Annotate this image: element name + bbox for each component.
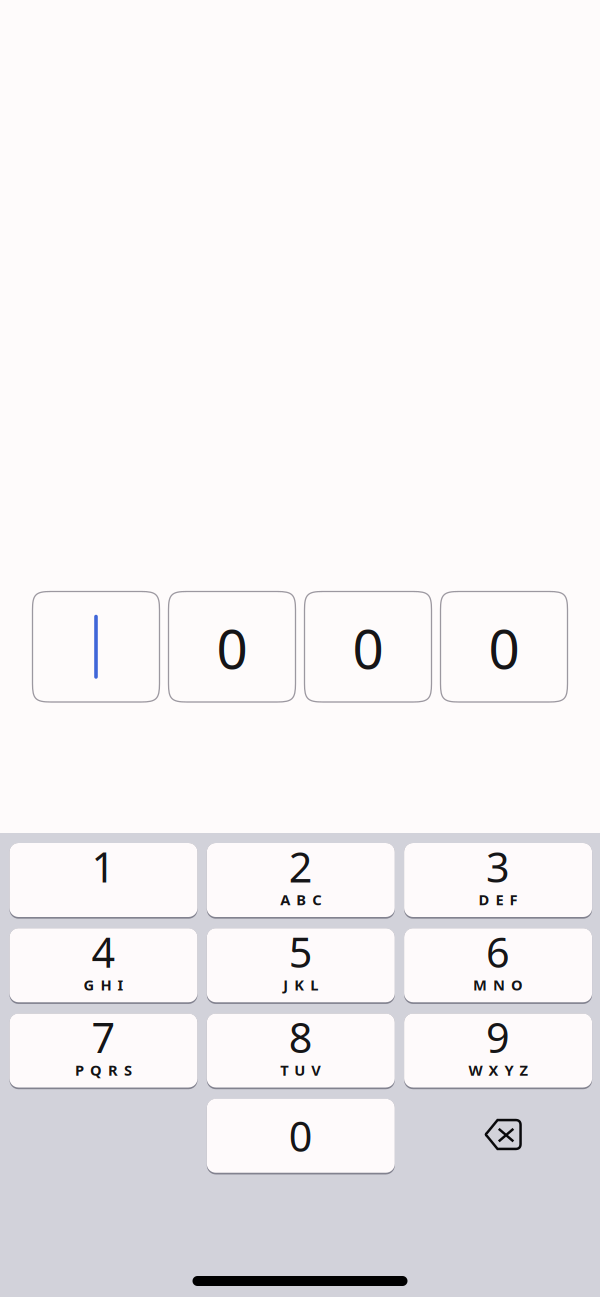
staticText: 8 bbox=[289, 1010, 313, 1064]
staticText: 7 bbox=[91, 1010, 115, 1064]
button[interactable]: 5 bbox=[207, 928, 395, 1002]
staticText: 0 bbox=[216, 611, 247, 684]
button[interactable]: 7 bbox=[9, 1013, 197, 1087]
button[interactable]: Delete bbox=[404, 1099, 592, 1173]
button[interactable]: Code digit, 0 bbox=[304, 591, 431, 702]
staticText: 9 bbox=[486, 1010, 510, 1064]
button[interactable]: 2 bbox=[207, 843, 395, 917]
staticText: J K L bbox=[283, 975, 318, 994]
staticText: 1 bbox=[91, 839, 115, 894]
button[interactable]: Code digit, 0 bbox=[168, 591, 295, 702]
button[interactable]: 6 bbox=[404, 928, 592, 1002]
staticText: 6 bbox=[486, 924, 510, 979]
staticText: D E F bbox=[479, 890, 518, 909]
button[interactable]: 3 bbox=[404, 843, 592, 917]
staticText: P Q R S bbox=[75, 1060, 132, 1080]
button[interactable]: Code digit 1, empty bbox=[32, 591, 159, 702]
staticText: 3 bbox=[486, 839, 510, 894]
button[interactable]: 8 bbox=[207, 1013, 395, 1087]
staticText: W X Y Z bbox=[469, 1060, 528, 1080]
button[interactable]: Code digit, 0 bbox=[440, 591, 567, 702]
staticText: 5 bbox=[289, 924, 313, 979]
staticText: A B C bbox=[280, 890, 321, 909]
staticText: M N O bbox=[473, 975, 523, 994]
staticText: 0 bbox=[488, 611, 519, 684]
button[interactable]: 1 bbox=[9, 843, 197, 917]
button[interactable]: 0 bbox=[207, 1099, 395, 1173]
button[interactable]: 4 bbox=[9, 928, 197, 1002]
staticText: 0 bbox=[352, 611, 383, 684]
button[interactable]: 9 bbox=[404, 1013, 592, 1087]
staticText: T U V bbox=[280, 1060, 321, 1080]
staticText: 4 bbox=[91, 924, 115, 979]
staticText: 0 bbox=[289, 1108, 313, 1163]
staticText: 2 bbox=[289, 839, 313, 894]
staticText: G H I bbox=[83, 975, 123, 994]
